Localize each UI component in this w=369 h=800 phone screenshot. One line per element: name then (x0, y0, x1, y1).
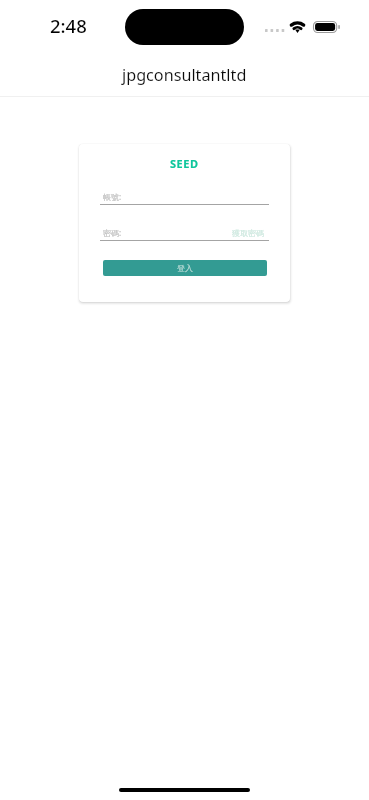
other: Wi-Fi (290, 21, 305, 33)
other: Battery (313, 21, 339, 33)
button[interactable]: 登入 (103, 260, 267, 276)
staticText: 2:48 (50, 13, 87, 35)
staticText: 密碼: (103, 227, 122, 238)
button[interactable]: 密碼: (100, 227, 220, 238)
other: Cellular signal (265, 29, 283, 32)
staticText: 登入 (177, 263, 193, 273)
staticText: 獲取密碼 (232, 228, 264, 238)
staticText: SEED (170, 156, 199, 171)
button[interactable]: 帳號: (100, 191, 266, 202)
button[interactable]: 獲取密碼 (232, 228, 264, 238)
staticText: 帳號: (103, 191, 122, 202)
staticText: jpgconsultantltd (122, 64, 247, 86)
